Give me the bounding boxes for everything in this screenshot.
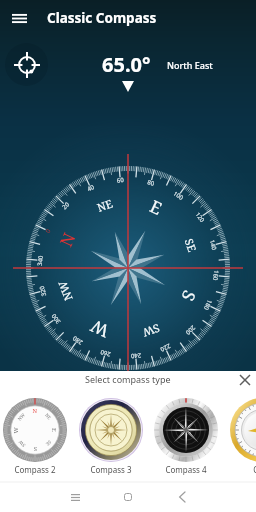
button[interactable]: Home (113, 482, 142, 512)
button[interactable]: Compass 4 (154, 398, 218, 473)
staticText: Classic Compass (47, 9, 157, 27)
button[interactable]: Compass 3 (79, 398, 143, 473)
staticText: Select compass type (85, 373, 171, 385)
button[interactable]: Close (232, 367, 256, 392)
button[interactable]: Com (230, 398, 256, 473)
button[interactable]: Back (167, 482, 196, 512)
staticText: Compass 3 (90, 464, 132, 475)
staticText: 65.0° (102, 51, 151, 78)
button[interactable]: Calibrate compass (5, 43, 48, 86)
staticText: Compass 2 (14, 464, 56, 475)
staticText: North East (167, 59, 213, 71)
staticText: Compass 4 (165, 464, 207, 475)
staticText: Com (253, 464, 256, 475)
button[interactable]: Compass 2 (3, 398, 67, 473)
button[interactable]: Open navigation menu (4, 3, 34, 33)
button[interactable]: Recent apps (61, 482, 90, 512)
